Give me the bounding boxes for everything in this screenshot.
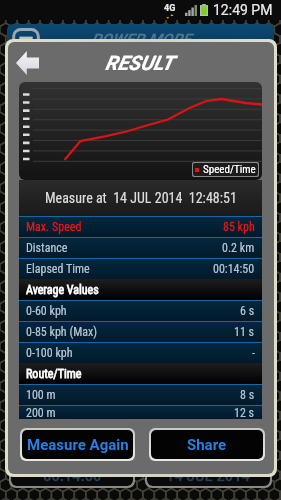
staticText: RESULT bbox=[105, 51, 174, 74]
staticText: 4G bbox=[164, 3, 176, 14]
staticText: 200 m bbox=[26, 406, 56, 419]
staticText: Average Values bbox=[26, 283, 99, 297]
staticText: 100 m bbox=[26, 388, 56, 402]
staticText: 00:14:50 bbox=[43, 465, 102, 485]
button[interactable]: Back bbox=[8, 42, 55, 82]
button[interactable]: 200 m bbox=[19, 406, 262, 419]
staticText: Max. Speed bbox=[26, 220, 82, 234]
staticText: 6 s bbox=[240, 304, 255, 318]
staticText: 85 kph bbox=[223, 220, 255, 234]
staticText: 14 JUL 2014 bbox=[166, 465, 251, 485]
button[interactable]: Measure Again bbox=[22, 430, 133, 459]
button[interactable]: 0-85 kph (Max) bbox=[19, 322, 262, 342]
staticText: 00:14:50 bbox=[213, 262, 255, 276]
staticText: 12 s bbox=[234, 406, 255, 419]
staticText: POWER MORE bbox=[91, 30, 191, 49]
staticText: 0-85 kph (Max) bbox=[26, 325, 98, 339]
button[interactable]: 100 m bbox=[19, 385, 262, 405]
button[interactable]: 0-60 kph bbox=[19, 301, 262, 321]
staticText: 0.2 km bbox=[222, 241, 255, 255]
staticText: 0-100 kph bbox=[26, 346, 73, 360]
button[interactable]: Max. Speed bbox=[19, 217, 262, 237]
staticText: Speed/Time bbox=[203, 163, 256, 176]
staticText: - bbox=[252, 346, 255, 360]
staticText: Measure at 14 JUL 2014 12:48:51 bbox=[45, 190, 237, 206]
button[interactable]: Elapsed Time bbox=[19, 259, 262, 279]
staticText: 11 s bbox=[234, 325, 255, 339]
button[interactable]: Distance bbox=[19, 238, 262, 258]
staticText: 0-60 kph bbox=[26, 304, 67, 318]
staticText: Elapsed Time bbox=[26, 262, 90, 276]
staticText: 12:49 PM bbox=[213, 2, 273, 18]
staticText: Share bbox=[187, 436, 227, 454]
staticText: Distance bbox=[26, 241, 68, 255]
staticText: Measure Again bbox=[27, 436, 129, 454]
button[interactable]: Share bbox=[151, 430, 263, 459]
button[interactable]: 0-100 kph bbox=[19, 343, 262, 363]
staticText: 8 s bbox=[240, 388, 255, 402]
staticText: Route/Time bbox=[26, 367, 82, 381]
